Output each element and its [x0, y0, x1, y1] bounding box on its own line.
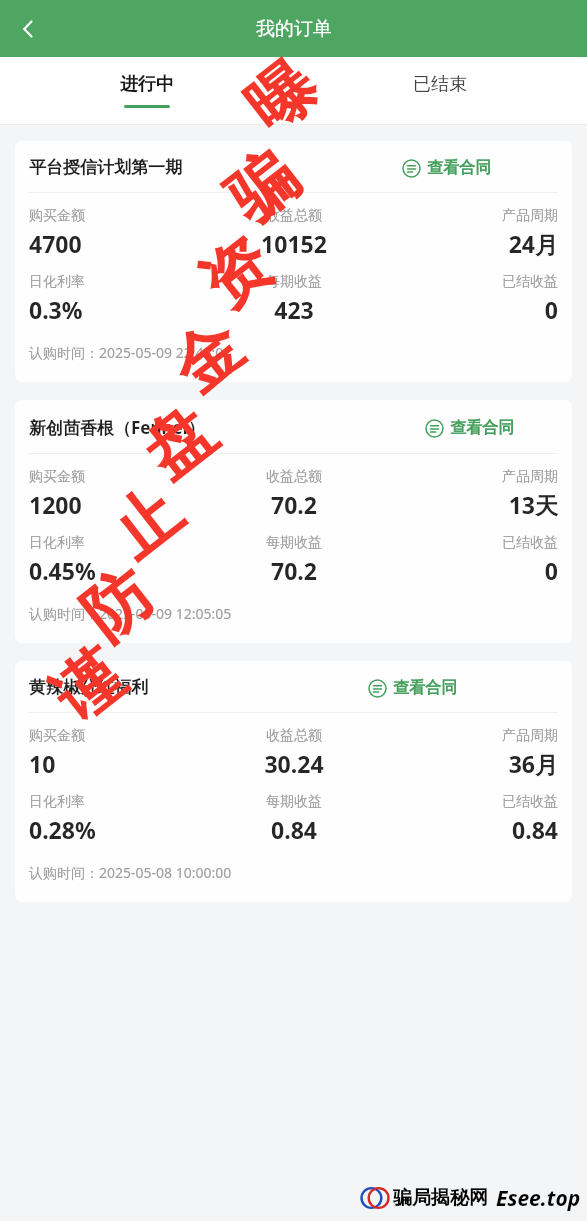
staticText: 423 — [274, 294, 314, 325]
button[interactable]: 黄辣椒分红福利 — [15, 661, 572, 902]
staticText: 盘 — [126, 388, 229, 494]
staticText: 1200 — [29, 489, 82, 520]
staticText: 10 — [29, 748, 56, 779]
staticText: 平台授信计划第一期 — [29, 157, 182, 178]
staticText: 我的订单 — [256, 17, 332, 41]
staticText: 4700 — [29, 228, 82, 259]
staticText: 认购时间：2025-05-09 22:45:01 — [29, 343, 232, 362]
staticText: 新创茴香根（Fennel） — [29, 416, 205, 439]
button[interactable]: 平台授信计划第一期 — [15, 141, 572, 382]
staticText: 产品周期 — [502, 468, 558, 486]
staticText: 查看合同 — [393, 678, 457, 698]
staticText: 0.3% — [29, 294, 83, 325]
button[interactable]: 已结束 — [293, 57, 587, 125]
staticText: 0.84 — [512, 814, 558, 845]
staticText: 每期收益 — [266, 273, 322, 291]
staticText: 0 — [544, 294, 558, 325]
staticText: 黄辣椒分红福利 — [29, 677, 148, 698]
staticText: 骗局揭秘网 — [393, 1186, 488, 1210]
staticText: 防 — [65, 551, 168, 657]
staticText: 10152 — [261, 228, 327, 259]
staticText: 进行中 — [120, 73, 174, 96]
staticText: 70.2 — [271, 489, 317, 520]
staticText: 13天 — [508, 489, 558, 520]
staticText: 已结束 — [413, 73, 467, 96]
staticText: 曝 — [230, 43, 333, 149]
staticText: 金 — [155, 304, 258, 410]
staticText: 止 — [94, 469, 197, 575]
staticText: 收益总额 — [266, 468, 322, 486]
staticText: 谨 — [36, 632, 139, 738]
staticText: 骗 — [210, 133, 313, 239]
staticText: 0.84 — [271, 814, 317, 845]
staticText: 购买金额 — [29, 468, 85, 486]
staticText: 产品周期 — [502, 207, 558, 225]
button[interactable]: 查看合同 — [368, 678, 457, 698]
button[interactable]: 进行中 — [0, 57, 293, 125]
staticText: 购买金额 — [29, 207, 85, 225]
button[interactable]: 查看合同 — [425, 418, 514, 438]
staticText: 24月 — [508, 228, 558, 259]
staticText: 日化利率 — [29, 793, 85, 811]
staticText: 收益总额 — [266, 207, 322, 225]
staticText: 日化利率 — [29, 534, 85, 552]
staticText: 查看合同 — [450, 418, 514, 438]
staticText: 已结收益 — [502, 793, 558, 811]
staticText: 每期收益 — [266, 793, 322, 811]
staticText: 0.28% — [29, 814, 96, 845]
staticText: 收益总额 — [266, 727, 322, 745]
staticText: 资 — [184, 220, 287, 326]
staticText: 30.24 — [264, 748, 324, 779]
staticText: 0.45% — [29, 555, 96, 586]
staticText: 70.2 — [271, 555, 317, 586]
staticText: Esee.top — [496, 1184, 581, 1213]
button[interactable]: 查看合同 — [402, 158, 491, 178]
staticText: 已结收益 — [502, 534, 558, 552]
staticText: 0 — [544, 555, 558, 586]
staticText: 认购时间：2025-05-08 10:00:00 — [29, 863, 232, 882]
staticText: 产品周期 — [502, 727, 558, 745]
staticText: 已结收益 — [502, 273, 558, 291]
staticText: 日化利率 — [29, 273, 85, 291]
button[interactable]: 新创茴香根（Fennel） — [15, 400, 572, 643]
staticText: 查看合同 — [427, 158, 491, 178]
staticText: 每期收益 — [266, 534, 322, 552]
staticText: 36月 — [508, 748, 558, 779]
button[interactable]: Back — [0, 0, 56, 57]
staticText: 购买金额 — [29, 727, 85, 745]
staticText: 认购时间：2025-05-09 12:05:05 — [29, 604, 232, 623]
